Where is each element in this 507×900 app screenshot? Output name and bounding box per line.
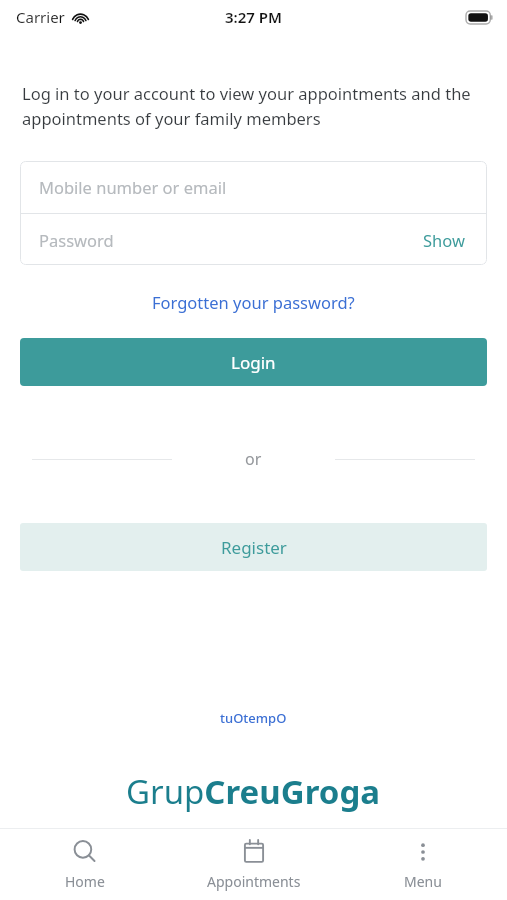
staticText: GrupCreuGroga [126, 769, 381, 814]
button[interactable]: Forgotten your password? [142, 287, 365, 317]
other: Appointments [241, 839, 267, 865]
button[interactable]: Register [20, 523, 487, 571]
staticText: Log in to your account to view your appo… [22, 82, 473, 130]
other: Menu [410, 839, 436, 865]
button[interactable]: Home [0, 833, 169, 897]
staticText: Show [423, 229, 465, 251]
staticText: or [245, 448, 262, 470]
staticText: tuOtempO [220, 709, 287, 727]
button[interactable]: Password [20, 214, 487, 265]
button[interactable]: Login [20, 338, 487, 386]
staticText: Appointments [207, 872, 301, 891]
staticText: Mobile number or email [39, 176, 227, 198]
button[interactable]: Mobile number or email [20, 161, 487, 213]
staticText: Password [39, 229, 114, 251]
button[interactable]: Show [419, 225, 469, 255]
staticText: Menu [404, 872, 442, 891]
staticText: Home [65, 872, 105, 891]
other: Home [72, 839, 98, 865]
staticText: 3:27 PM [225, 7, 282, 27]
button[interactable]: Menu [338, 833, 507, 897]
staticText: Forgotten your password? [152, 291, 355, 313]
staticText: Login [231, 351, 276, 374]
button[interactable]: Appointments [169, 833, 338, 897]
staticText: Carrier [16, 7, 65, 27]
staticText: Register [221, 536, 287, 559]
